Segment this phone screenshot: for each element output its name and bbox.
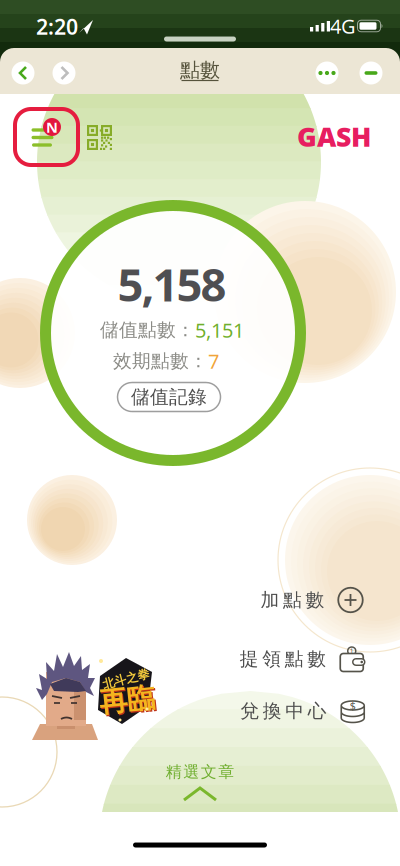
button[interactable] [315,61,338,84]
staticText: 儲值點數： [100,318,195,341]
staticText: 章 [218,762,234,782]
button[interactable]: 提 [240,646,366,672]
staticText: 再臨 [99,683,155,717]
staticText: 選 [183,762,199,782]
staticText: $ [350,698,356,713]
button[interactable] [359,61,382,84]
staticText: 7 [208,348,219,374]
staticText: 點數 [180,58,220,82]
button[interactable] [11,61,34,84]
staticText: 點 [283,588,302,611]
button[interactable]: 加 [260,587,363,613]
staticText: 數 [307,647,326,670]
staticText: 再臨 [100,684,156,718]
staticText: 心 [308,699,327,722]
staticText: 換 [263,699,282,722]
staticText: 兌 [240,699,259,722]
staticText: 2:20 [36,12,78,41]
staticText: 4G [330,13,356,39]
staticText: 提 [240,647,259,670]
button[interactable]: 精 [100,760,300,808]
button[interactable]: 兌 [240,699,366,722]
staticText: 數 [305,588,324,611]
staticText: 5,158 [117,254,226,314]
staticText: 點 [285,647,304,670]
button[interactable]: N [15,109,78,165]
staticText: N [46,117,58,137]
staticText: 文 [201,762,217,782]
staticText: 加 [260,588,279,611]
staticText: 北斗之拳 [102,672,150,686]
staticText: GASH [297,119,371,154]
button[interactable]: 北斗之拳 [30,648,162,740]
button[interactable] [87,125,112,150]
staticText: 5,151 [195,317,244,343]
staticText: 精 [166,762,182,782]
staticText: 領 [262,647,281,670]
button[interactable]: 儲值記錄 [117,382,220,411]
staticText: 效期點數： [113,349,208,372]
staticText: 1 [350,647,354,655]
staticText: 中 [285,699,304,722]
button[interactable] [52,61,75,84]
staticText: 儲值記錄 [131,385,207,408]
